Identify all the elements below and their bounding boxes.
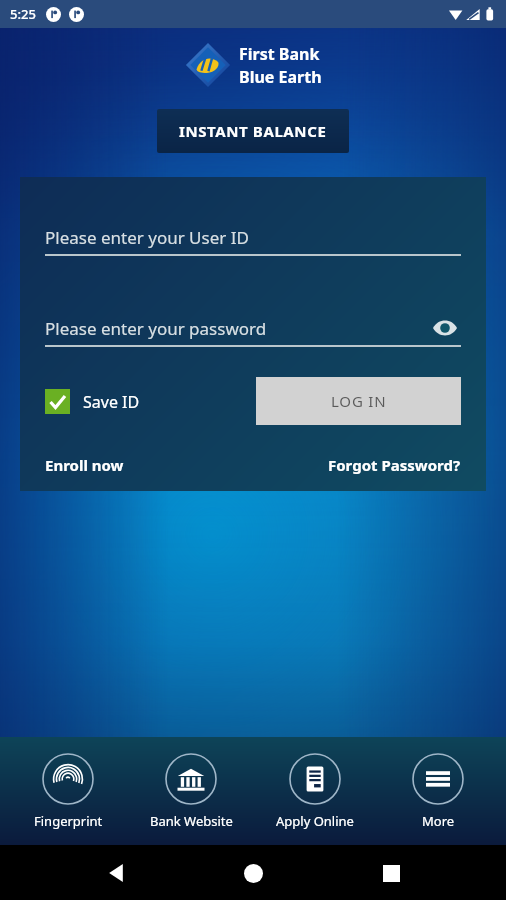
button[interactable]: Recent apps	[369, 851, 413, 895]
staticText: Forgot Password?	[328, 455, 461, 475]
staticText: Apply Online	[276, 812, 354, 830]
staticText: Please enter your password	[45, 317, 267, 340]
staticText: More	[422, 812, 455, 830]
button[interactable]: Bank Website	[136, 749, 246, 834]
staticText: INSTANT BALANCE	[179, 121, 327, 141]
staticText: Fingerprint	[34, 812, 103, 830]
button[interactable]: Enroll now	[45, 455, 124, 475]
button[interactable]: Home	[231, 851, 275, 895]
button[interactable]: LOG IN	[256, 377, 461, 425]
staticText: LOG IN	[331, 391, 387, 411]
staticText: Bank Website	[150, 812, 233, 830]
staticText: Enroll now	[45, 455, 124, 475]
button[interactable]: INSTANT BALANCE	[157, 109, 349, 153]
button[interactable]: More	[383, 749, 493, 834]
staticText: Save ID	[83, 391, 140, 413]
staticText: First Bank	[239, 43, 320, 65]
button[interactable]: Fingerprint	[13, 749, 123, 834]
button[interactable]: Save ID	[45, 389, 140, 414]
button[interactable]: Forgot Password?	[328, 455, 461, 475]
button[interactable]: Show password	[429, 312, 461, 344]
button[interactable]: Back	[94, 851, 138, 895]
button[interactable]: Apply Online	[260, 749, 370, 834]
staticText: Please enter your User ID	[45, 226, 249, 249]
staticText: Blue Earth	[239, 66, 322, 88]
staticText: 5:25	[10, 5, 36, 23]
